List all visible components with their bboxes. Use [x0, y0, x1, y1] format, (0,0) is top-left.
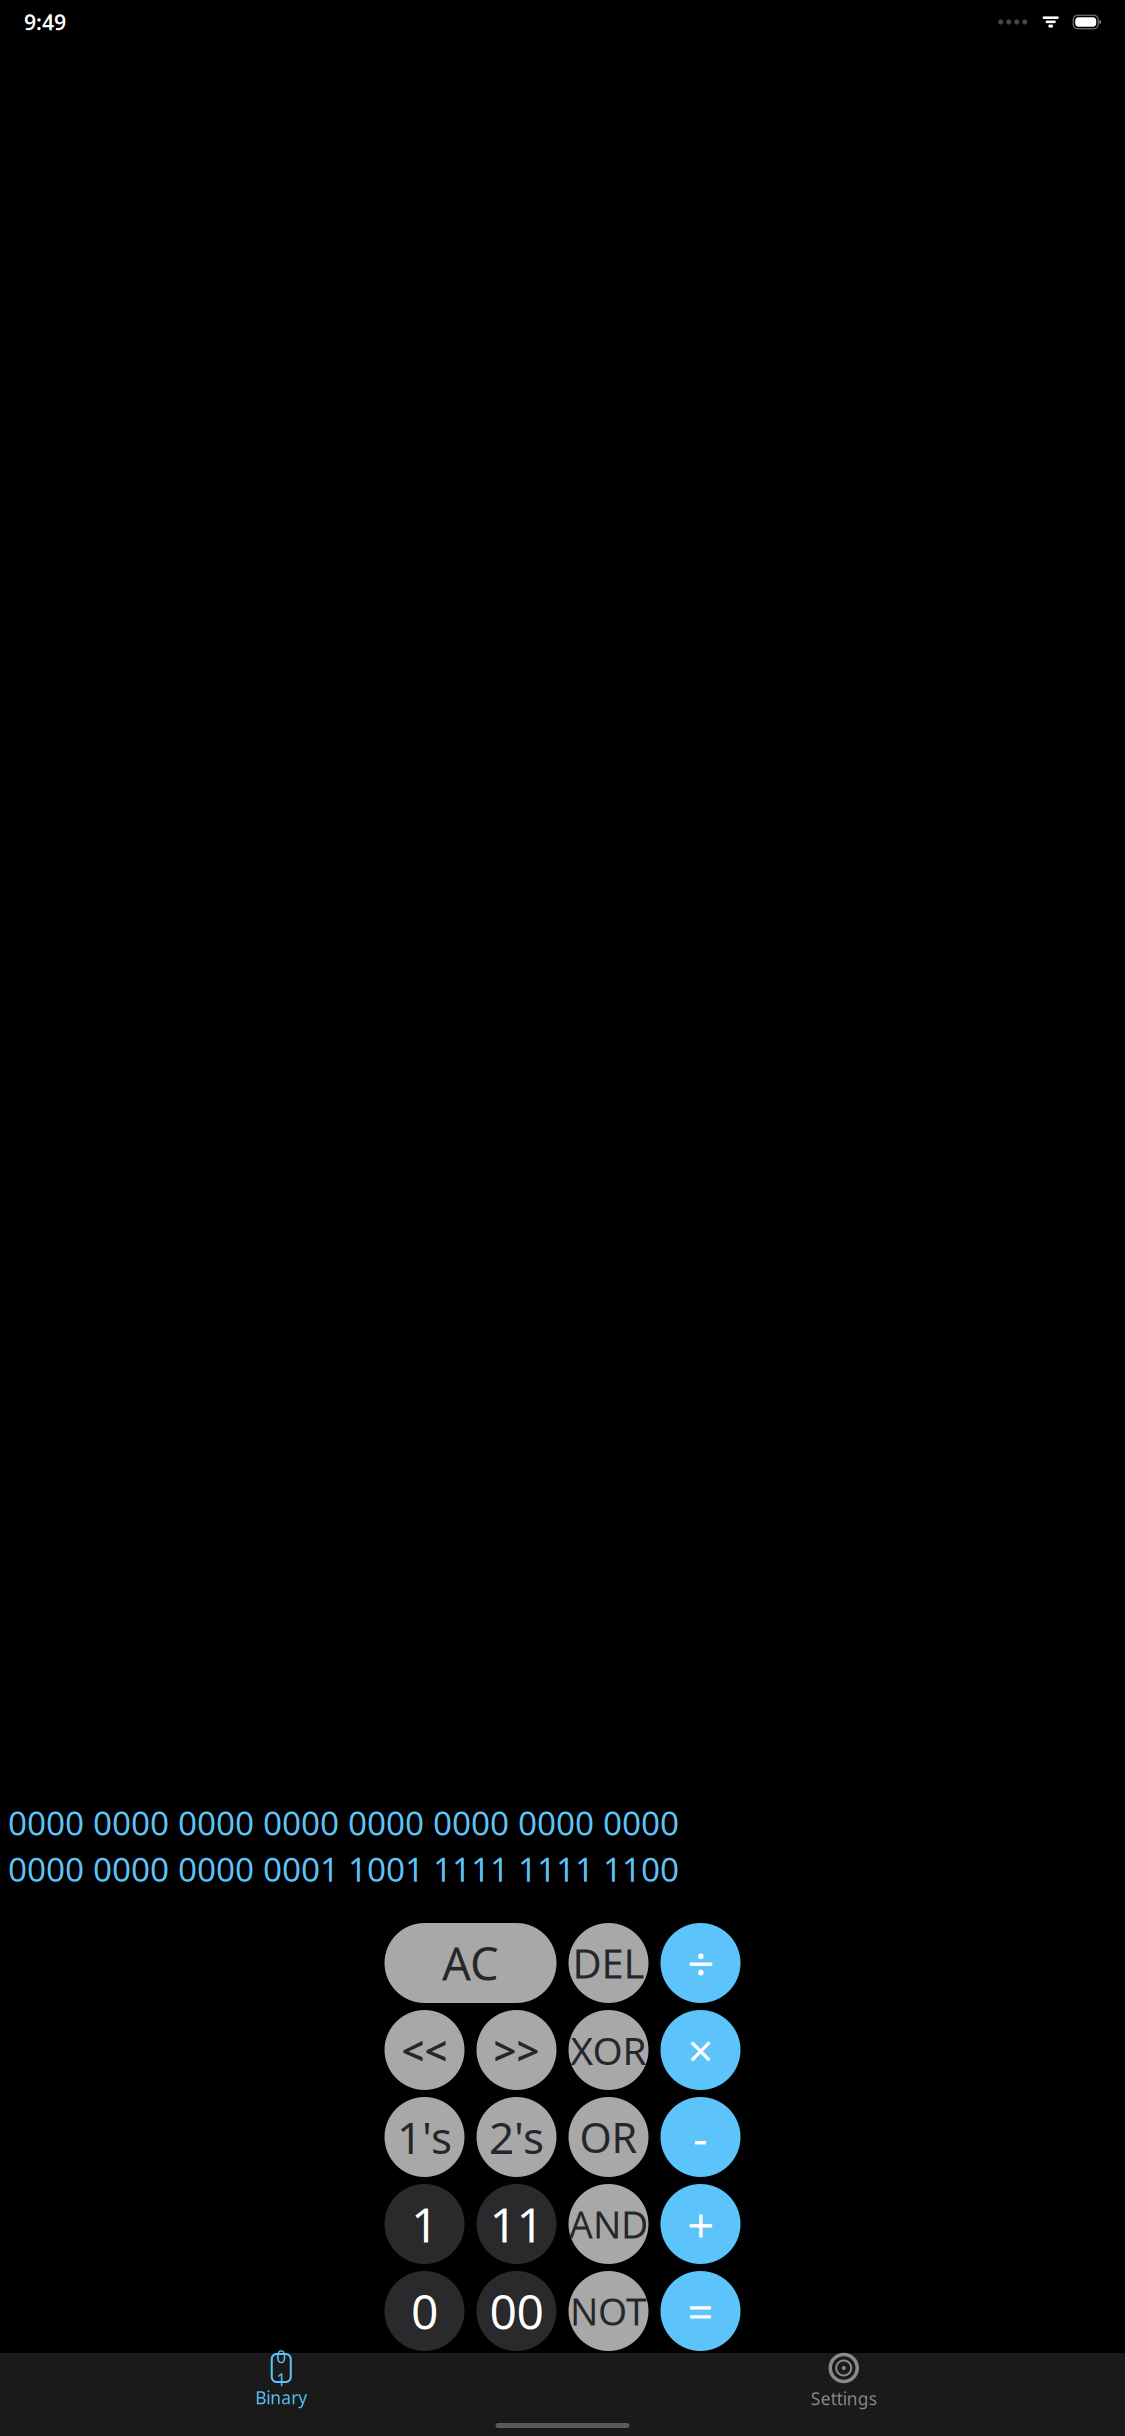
staticText: Settings [811, 2387, 877, 2410]
button[interactable]: - [660, 2097, 740, 2177]
button[interactable]: XOR [568, 2010, 648, 2090]
staticText: × [687, 2020, 713, 2080]
button[interactable]: 1 [384, 2184, 464, 2264]
staticText: AC [442, 1933, 499, 1993]
staticText: AND [569, 2199, 648, 2249]
button[interactable]: 11 [476, 2184, 556, 2264]
button[interactable]: ÷ [660, 1923, 740, 2003]
staticText: = [687, 2281, 713, 2341]
button[interactable]: >> [476, 2010, 556, 2090]
staticText: NOT [570, 2286, 647, 2336]
staticText: 00 [489, 2279, 543, 2343]
button[interactable]: Settings [562, 2345, 1125, 2410]
staticText: 01 [276, 2345, 286, 2391]
staticText: 1's [397, 2108, 452, 2166]
staticText: 9:49 [24, 8, 66, 36]
button[interactable]: 01 [0, 2346, 562, 2409]
staticText: OR [579, 2110, 637, 2164]
staticText: 1 [411, 2192, 438, 2256]
button[interactable]: 00 [476, 2271, 556, 2351]
button[interactable]: << [384, 2010, 464, 2090]
staticText: Binary [255, 2386, 307, 2409]
staticText: XOR [570, 2024, 646, 2076]
button[interactable]: + [660, 2184, 740, 2264]
button[interactable]: = [660, 2271, 740, 2351]
button[interactable]: 2's [476, 2097, 556, 2177]
staticText: 0 [411, 2279, 438, 2343]
button[interactable]: DEL [568, 1923, 648, 2003]
button[interactable]: × [660, 2010, 740, 2090]
staticText: << [401, 2023, 447, 2076]
staticText: DEL [572, 1936, 644, 1989]
staticText: 0000 0000 0000 0001 1001 1111 1111 1100 [8, 1847, 679, 1891]
button[interactable]: AND [568, 2184, 648, 2264]
staticText: 0000 0000 0000 0000 0000 0000 0000 0000 [8, 1800, 679, 1845]
staticText: 11 [489, 2192, 543, 2256]
button[interactable]: NOT [568, 2271, 648, 2351]
staticText: >> [493, 2023, 539, 2076]
staticText: ÷ [687, 1931, 714, 1995]
button[interactable]: 1's [384, 2097, 464, 2177]
staticText: 2's [489, 2108, 544, 2166]
button[interactable]: AC [384, 1923, 556, 2003]
button[interactable]: OR [568, 2097, 648, 2177]
staticText: + [687, 2192, 714, 2256]
staticText: - [693, 2107, 708, 2167]
button[interactable]: 0 [384, 2271, 464, 2351]
